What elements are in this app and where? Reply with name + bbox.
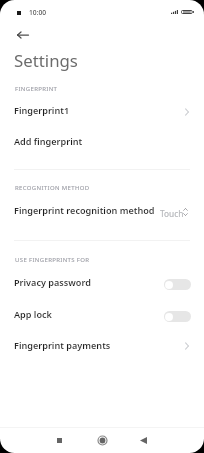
button[interactable]: Back <box>131 428 155 452</box>
button[interactable]: Open <box>182 341 192 351</box>
staticText: 10:00 <box>29 8 47 17</box>
staticText: Fingerprint recognition method <box>14 204 155 216</box>
button[interactable]: Change recognition method <box>179 206 191 218</box>
button[interactable]: Open <box>182 107 192 117</box>
button[interactable]: App lock <box>0 299 204 329</box>
button[interactable]: Toggle <box>164 279 191 290</box>
staticText: Fingerprint1 <box>14 104 70 116</box>
button[interactable]: Fingerprint recognition method <box>0 195 204 225</box>
staticText: Settings <box>14 49 78 72</box>
staticText: USE FINGERPRINTS FOR <box>15 256 90 264</box>
staticText: FINGERPRINT <box>15 85 58 93</box>
button[interactable]: Add fingerprint <box>0 126 204 156</box>
button[interactable]: Toggle <box>164 311 191 322</box>
staticText: Add fingerprint <box>14 135 83 147</box>
staticText: App lock <box>14 308 52 320</box>
staticText: Touch <box>160 208 184 219</box>
button[interactable]: Fingerprint payments <box>0 330 204 360</box>
button[interactable]: Privacy password <box>0 267 204 297</box>
button[interactable]: Fingerprint1 <box>0 95 204 125</box>
staticText: Privacy password <box>14 276 91 288</box>
button[interactable]: Back <box>11 23 35 47</box>
button[interactable]: Recents <box>47 428 71 452</box>
button[interactable]: Home <box>90 428 114 452</box>
staticText: RECOGNITION METHOD <box>15 184 90 192</box>
staticText: Fingerprint payments <box>14 339 111 351</box>
